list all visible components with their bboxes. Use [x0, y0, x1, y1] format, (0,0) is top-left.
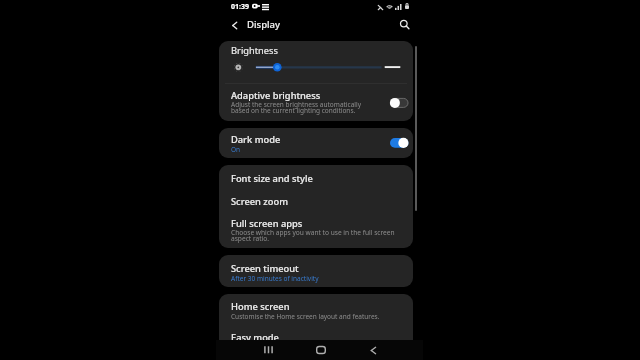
staticText: Full screen apps: [231, 217, 303, 230]
button[interactable]: Recent apps: [248, 340, 288, 360]
staticText: Screen timeout: [231, 262, 299, 275]
staticText: After 30 minutes of inactivity: [231, 274, 319, 283]
button[interactable]: [219, 216, 413, 248]
staticText: Adaptive brightness: [231, 89, 321, 102]
staticText: Font size and style: [231, 172, 313, 185]
button[interactable]: [219, 86, 413, 121]
button[interactable]: Navigate up: [226, 17, 243, 34]
button[interactable]: Home: [300, 340, 341, 360]
staticText: On: [231, 145, 241, 154]
staticText: Brightness: [231, 44, 278, 57]
button[interactable]: Switch, off: [388, 96, 411, 110]
staticText: Customise the Home screen layout and fea…: [231, 312, 380, 321]
staticText: Choose which apps you want to use in the…: [231, 228, 395, 243]
staticText: Screen zoom: [231, 195, 288, 208]
button[interactable]: Back: [353, 340, 393, 360]
button[interactable]: [219, 128, 413, 158]
button[interactable]: [219, 326, 413, 340]
staticText: Home screen: [231, 300, 290, 313]
button[interactable]: [219, 294, 413, 326]
button[interactable]: [219, 165, 413, 191]
staticText: Adjust the screen brightness automatical…: [231, 100, 361, 115]
button[interactable]: Search: [396, 16, 414, 34]
staticText: Dark mode: [231, 133, 281, 146]
staticText: 01:39: [231, 2, 249, 12]
button[interactable]: Switch, on: [388, 136, 411, 150]
staticText: Display: [247, 18, 281, 31]
button[interactable]: [219, 191, 413, 216]
staticText: Easy mode: [231, 331, 279, 340]
button[interactable]: [219, 255, 413, 287]
